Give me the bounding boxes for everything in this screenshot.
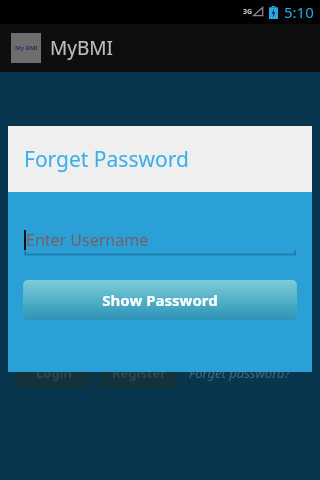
button[interactable]: Forget password? — [189, 364, 291, 382]
staticText: Enter Username — [26, 229, 149, 251]
button[interactable]: Login — [16, 357, 91, 389]
staticText: My BMI — [15, 44, 38, 52]
staticText: 5:10 — [284, 2, 314, 22]
staticText: Show Password — [102, 290, 218, 310]
button[interactable]: Enter Username — [24, 224, 296, 256]
staticText: MyBMI — [50, 35, 113, 61]
staticText: Forget Password — [24, 145, 189, 174]
staticText: Login — [36, 364, 72, 382]
staticText: 3G — [243, 7, 253, 17]
staticText: Register — [112, 364, 167, 382]
button[interactable]: Show Password — [23, 280, 297, 320]
button[interactable]: Register — [100, 357, 178, 389]
